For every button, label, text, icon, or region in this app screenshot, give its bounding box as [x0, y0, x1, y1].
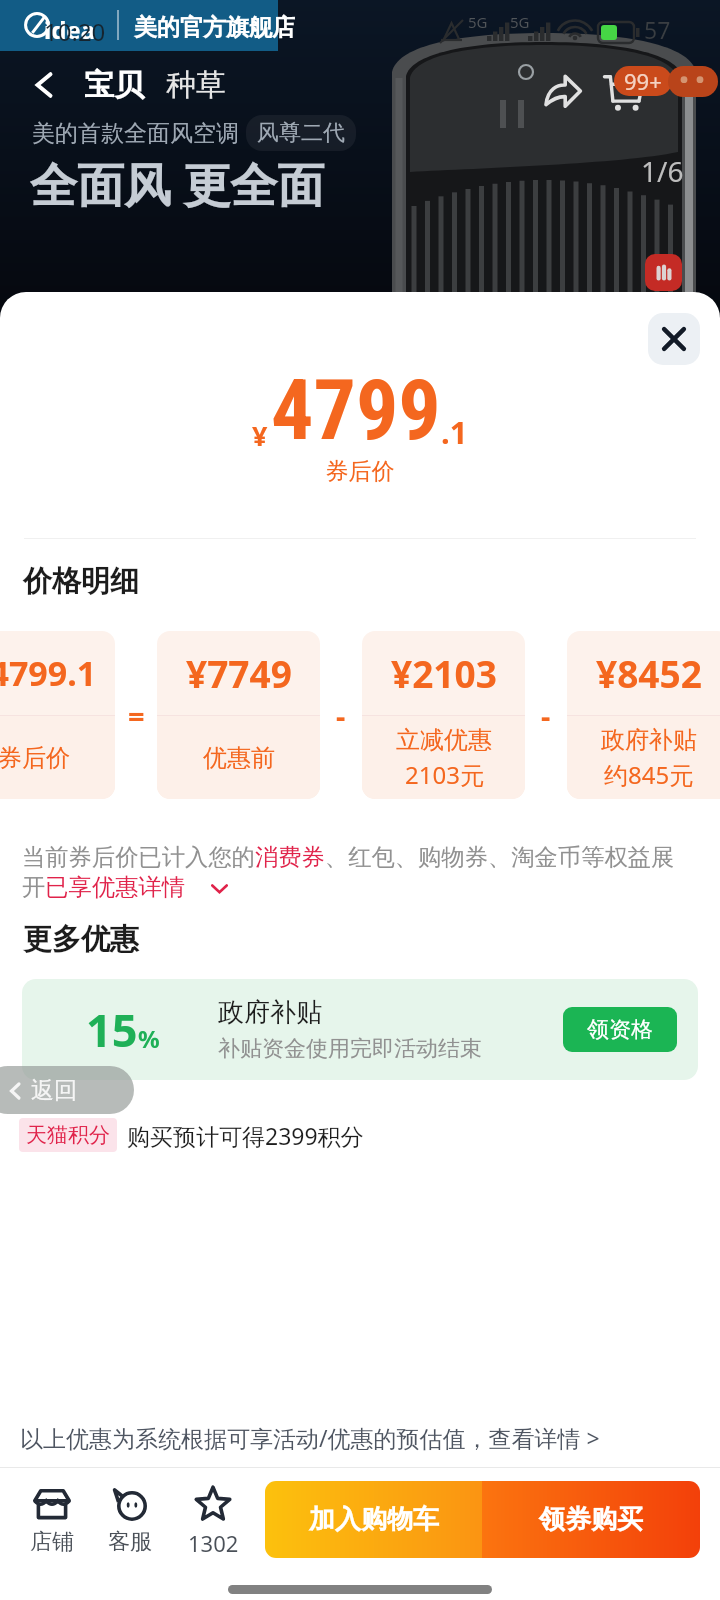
staticText: ¥4799.1	[0, 650, 97, 696]
button[interactable]: 领资格	[563, 1007, 677, 1052]
staticText: 立减优惠	[396, 725, 492, 755]
staticText: idea	[44, 13, 96, 46]
staticText: 更多优惠	[23, 921, 139, 958]
staticText: 约845元	[604, 758, 694, 791]
button[interactable]: 1302	[173, 1484, 253, 1558]
staticText: 美的官方旗舰店	[134, 13, 295, 42]
staticText: 政府补贴	[218, 996, 322, 1029]
staticText: 宝贝	[84, 66, 144, 104]
button[interactable]: ¥8452	[567, 631, 720, 799]
button[interactable]: 客服	[90, 1484, 170, 1556]
staticText: ¥	[252, 417, 268, 454]
button[interactable]: ¥7749	[157, 631, 320, 799]
staticText: ¥8452	[596, 648, 702, 698]
button[interactable]: 99+	[614, 66, 672, 96]
button[interactable]: Back	[26, 67, 62, 103]
staticText: 价格明细	[23, 563, 139, 600]
staticText: 美的首款全面风空调	[32, 119, 239, 148]
staticText: 以上优惠为系统根据可享活动/优惠的预估值，查看详情 >	[20, 1422, 600, 1453]
staticText: 57	[644, 14, 671, 45]
staticText: ¥2103	[391, 648, 497, 698]
staticText: =	[128, 696, 145, 735]
staticText: 客服	[108, 1528, 152, 1556]
staticText: 补贴资金使用完即活动结束	[218, 1035, 482, 1063]
staticText: 种草	[166, 66, 226, 104]
staticText: 返回	[31, 1076, 77, 1105]
staticText: 99+	[624, 66, 662, 96]
button[interactable]: 领券购买	[482, 1481, 700, 1558]
button[interactable]: Video	[645, 254, 682, 291]
staticText: 券后价	[0, 457, 720, 486]
staticText: 店铺	[30, 1528, 74, 1556]
staticText: 5G	[510, 12, 530, 32]
staticText: 领资格	[587, 1016, 653, 1044]
button[interactable]: 15	[22, 979, 698, 1080]
staticText: %	[138, 1022, 160, 1055]
button[interactable]: 加入购物车	[265, 1481, 482, 1558]
staticText: .1	[441, 411, 468, 453]
button[interactable]: Close	[648, 313, 700, 365]
staticText: ¥7749	[186, 648, 292, 698]
staticText: 加入购物车	[309, 1503, 439, 1536]
staticText: 5G	[468, 12, 488, 32]
staticText: 优惠前	[203, 743, 275, 773]
staticText: 当前券后价已计入您的消费券、红包、购物券、淘金币等权益展 开已享优惠详情	[22, 843, 675, 902]
staticText: 2103元	[405, 758, 484, 791]
staticText: 1/6	[641, 152, 684, 190]
button[interactable]: ¥4799.1	[0, 631, 115, 799]
staticText: 风尊二代	[257, 119, 345, 147]
staticText: 券后价	[0, 743, 70, 773]
staticText: 10:20	[44, 15, 106, 48]
button[interactable]: More options	[668, 66, 718, 97]
staticText: 4799	[271, 361, 441, 459]
staticText: 购买预计可得2399积分	[127, 1120, 364, 1151]
staticText: 领券购买	[539, 1503, 643, 1536]
button[interactable]: ¥2103	[362, 631, 525, 799]
staticText: 政府补贴	[601, 725, 697, 755]
staticText: 1302	[188, 1528, 239, 1558]
staticText: 天猫积分	[26, 1122, 110, 1148]
button[interactable]: 店铺	[12, 1484, 92, 1556]
button[interactable]: Shopping cart	[602, 70, 644, 112]
button[interactable]: Share	[542, 71, 582, 111]
staticText: -	[541, 696, 551, 735]
staticText: 全面风 更全面	[30, 152, 325, 216]
staticText: 15	[86, 999, 138, 1060]
staticText: -	[336, 696, 346, 735]
button[interactable]: Back	[0, 1066, 134, 1114]
